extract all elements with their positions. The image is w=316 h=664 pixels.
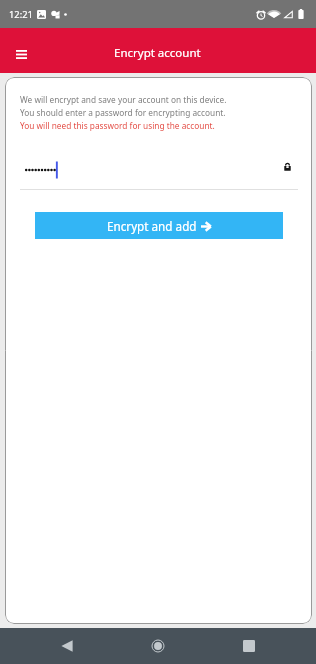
- button[interactable]: Back: [43, 628, 91, 664]
- staticText: We will encrypt and save your account on…: [20, 94, 227, 105]
- button[interactable]: Home: [134, 628, 182, 664]
- staticText: You should enter a password for encrypti…: [20, 107, 226, 118]
- staticText: Encrypt account: [114, 45, 201, 61]
- staticText: You will need this password for using th…: [20, 120, 215, 131]
- button[interactable]: Open navigation menu: [4, 34, 38, 68]
- staticText: 12:21: [9, 8, 33, 21]
- button[interactable]: Recent apps: [225, 628, 273, 664]
- staticText: Encrypt and add: [107, 218, 197, 234]
- button[interactable]: Encrypt and add: [35, 212, 283, 239]
